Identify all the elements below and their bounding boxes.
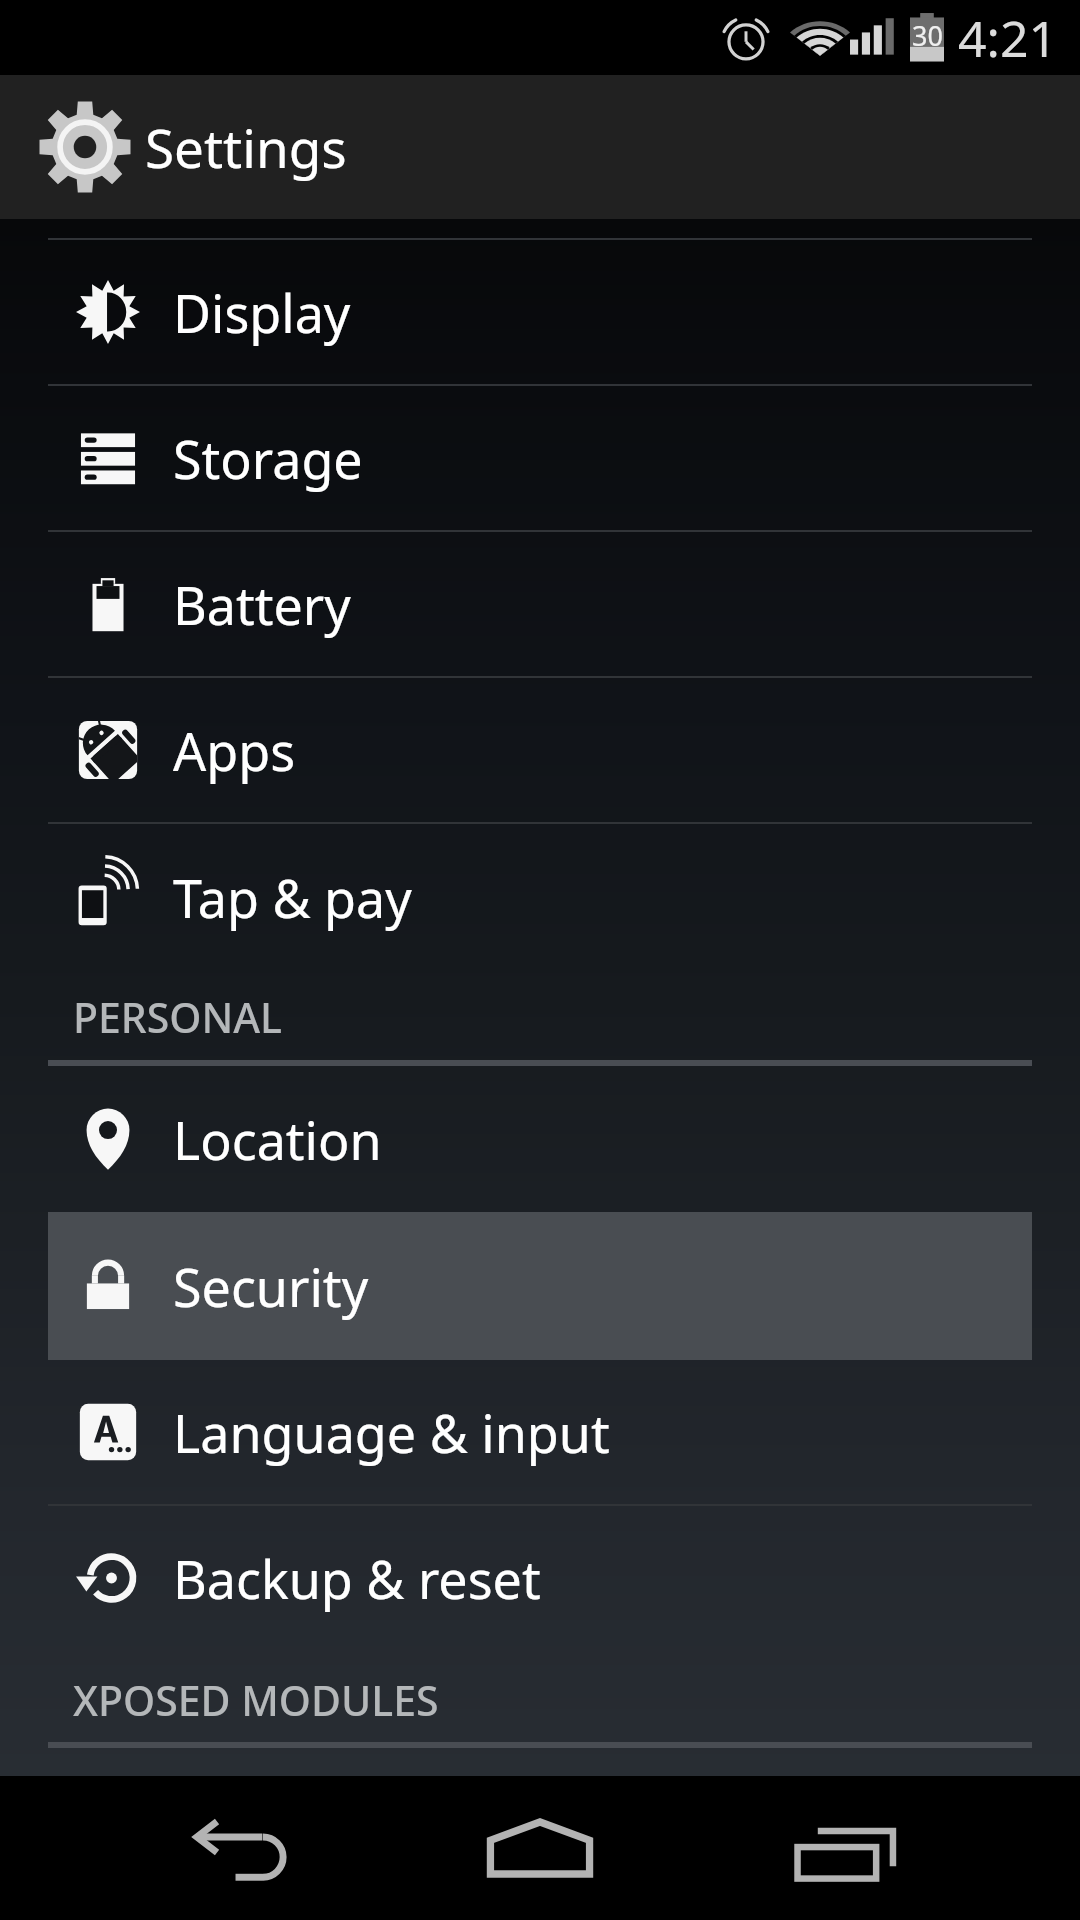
button[interactable]: Settings app icon	[0, 75, 420, 219]
staticText: Security	[173, 1251, 369, 1322]
staticText: 4:21	[958, 4, 1058, 72]
staticText: Backup & reset	[173, 1543, 541, 1614]
staticText: 30	[912, 17, 943, 54]
button[interactable]: Apps	[0, 678, 1080, 822]
staticText: Apps	[173, 715, 296, 786]
staticText: Battery	[173, 569, 351, 640]
button[interactable]: Battery	[0, 532, 1080, 676]
staticText: Settings	[145, 111, 347, 183]
button[interactable]: Backup & reset	[0, 1506, 1080, 1650]
staticText: XPOSED MODULES	[73, 1672, 439, 1728]
staticText: Display	[173, 277, 351, 348]
button[interactable]: Recent apps	[663, 1776, 1023, 1920]
button[interactable]: Display	[0, 240, 1080, 384]
staticText: Language & input	[173, 1397, 610, 1468]
button[interactable]: Back	[60, 1776, 420, 1920]
button[interactable]: Language & input	[0, 1360, 1080, 1504]
other: Settings app icon	[38, 100, 132, 194]
button[interactable]: Storage	[0, 386, 1080, 530]
staticText: Location	[173, 1104, 382, 1175]
staticText: Storage	[173, 423, 363, 494]
button[interactable]: Tap & pay	[0, 824, 1080, 970]
button[interactable]: Home	[420, 1776, 660, 1920]
staticText: Tap & pay	[173, 862, 412, 933]
button[interactable]: Security	[0, 1212, 1080, 1360]
button[interactable]: Location	[0, 1066, 1080, 1212]
staticText: PERSONAL	[73, 989, 283, 1045]
